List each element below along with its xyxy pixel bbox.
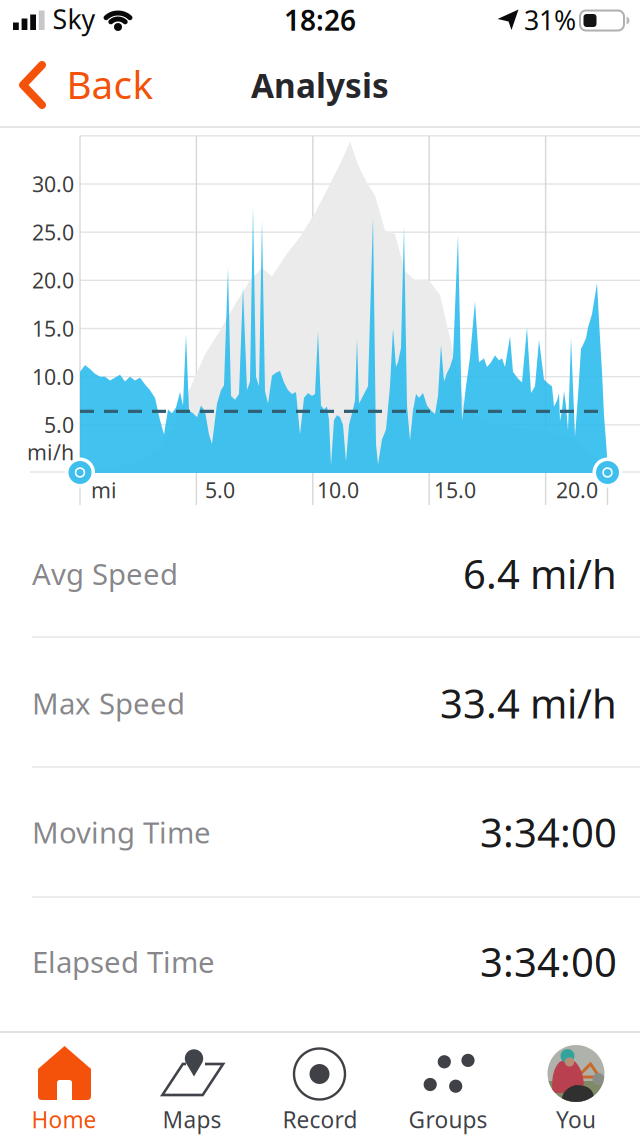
staticText: You [556, 1104, 596, 1134]
staticText: Max Speed [32, 683, 185, 722]
staticText: 5.0 [205, 476, 235, 504]
staticText: Home [31, 1104, 96, 1134]
staticText: 20.0 [556, 476, 598, 504]
staticText: Record [282, 1104, 357, 1134]
staticText: Maps [162, 1104, 221, 1134]
staticText: Analysis [251, 63, 389, 107]
staticText: Avg Speed [32, 554, 178, 593]
staticText: Moving Time [32, 812, 211, 851]
staticText: 18:26 [284, 1, 356, 39]
staticText: Elapsed Time [32, 942, 215, 981]
staticText: Sky [52, 1, 95, 37]
staticText: 10.0 [32, 362, 74, 391]
staticText: mi [91, 476, 117, 504]
staticText: 3:34:00 [480, 935, 617, 988]
staticText: 6.4 mi/h [463, 547, 617, 600]
staticText: 25.0 [32, 218, 74, 246]
button[interactable]: Record [256, 1033, 384, 1136]
button[interactable]: You [512, 1033, 640, 1136]
staticText: 20.0 [32, 266, 74, 294]
staticText: 33.4 mi/h [440, 676, 617, 729]
button[interactable]: Groups [384, 1033, 512, 1136]
button[interactable]: Back [0, 0, 160, 70]
staticText: 30.0 [32, 170, 74, 198]
staticText: mi/h [27, 438, 74, 466]
staticText: 15.0 [32, 314, 74, 343]
button[interactable]: Home [0, 1033, 128, 1136]
staticText: 31% [524, 2, 576, 38]
staticText: 3:34:00 [480, 805, 617, 858]
staticText: 10.0 [317, 476, 359, 504]
staticText: Groups [408, 1104, 487, 1134]
staticText: 15.0 [434, 476, 476, 504]
staticText: 5.0 [44, 411, 74, 439]
button[interactable]: Maps [128, 1033, 256, 1136]
staticText: Back [66, 58, 153, 110]
